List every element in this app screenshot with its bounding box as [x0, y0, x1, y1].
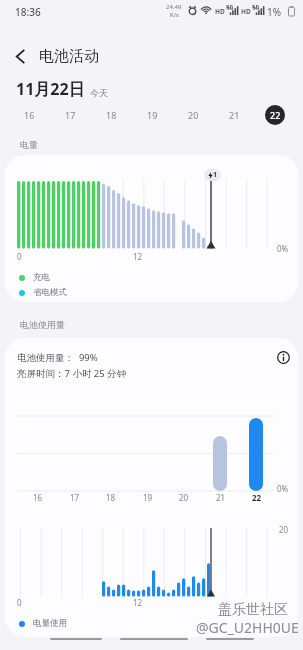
button[interactable]: 16 [19, 105, 39, 125]
staticText: 0% [277, 243, 289, 254]
button[interactable]: Back [0, 40, 303, 72]
staticText: 今天 [90, 87, 108, 98]
staticText: 18 [106, 109, 117, 121]
button[interactable]: Info [271, 345, 295, 369]
button[interactable]: Home [120, 638, 188, 640]
staticText: 20 [188, 109, 199, 121]
button[interactable]: 20 [183, 105, 203, 125]
staticText: 电量使用 [33, 618, 67, 629]
staticText: 18 [106, 492, 116, 503]
button[interactable]: 22 [265, 105, 285, 125]
staticText: 16 [24, 109, 35, 121]
staticText: 电池使用量： 99% [17, 351, 98, 364]
staticText: 21 [216, 492, 226, 503]
staticText: HD [241, 7, 251, 16]
staticText: 12 [133, 251, 143, 262]
staticText: 18:36 [15, 5, 41, 19]
staticText: @GC_U2HH0UE [196, 618, 299, 637]
staticText: 17 [70, 492, 80, 503]
button[interactable]: 17 [60, 105, 80, 125]
staticText: 1 [213, 170, 218, 180]
staticText: 0 [17, 597, 22, 608]
staticText: 16 [33, 492, 43, 503]
staticText: 22 [270, 109, 281, 121]
staticText: 20 [279, 524, 289, 535]
staticText: 亮屏时间：7 小时 25 分钟 [17, 367, 127, 380]
other: Back [16, 49, 25, 64]
button[interactable]: 19 [142, 105, 162, 125]
staticText: 24.49 [166, 3, 182, 11]
staticText: 21 [229, 109, 240, 121]
staticText: 电池使用量 [20, 319, 65, 330]
button[interactable]: Recents [206, 638, 254, 640]
staticText: 22 [252, 492, 262, 503]
staticText: 19 [147, 109, 158, 121]
staticText: 1% [267, 5, 282, 19]
button[interactable]: Back [50, 638, 102, 640]
staticText: 盖乐世社区 [218, 601, 288, 619]
staticText: 0% [277, 483, 289, 494]
staticText: 充电 [33, 272, 50, 283]
staticText: K/s [170, 11, 179, 19]
staticText: 19 [143, 492, 153, 503]
staticText: 20 [179, 492, 189, 503]
staticText: 省电模式 [33, 287, 67, 298]
staticText: HD [215, 7, 225, 16]
staticText: 0 [17, 251, 22, 262]
staticText: 11月22日 [16, 78, 85, 100]
staticText: 电池活动 [39, 47, 99, 66]
staticText: 电量 [20, 139, 38, 150]
staticText: 17 [65, 109, 76, 121]
button[interactable]: 18 [101, 105, 121, 125]
button[interactable]: 21 [224, 105, 244, 125]
staticText: 12 [133, 597, 143, 608]
